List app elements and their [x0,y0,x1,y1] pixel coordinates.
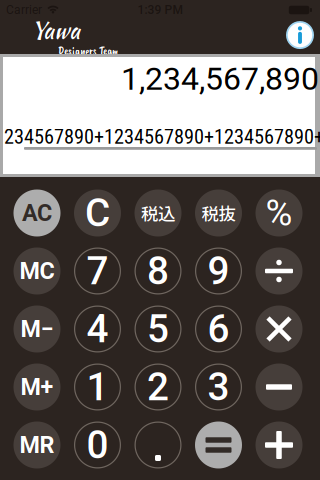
staticText: MR [19,431,54,459]
button[interactable]: MC [13,247,60,294]
button[interactable]: Minus [255,363,302,410]
button[interactable]: 5 [134,305,181,352]
staticText: M+ [20,373,53,401]
staticText: 9 [207,248,229,294]
button[interactable]: M− [13,305,60,352]
button[interactable]: 8 [134,247,181,294]
staticText: 税抜 [201,200,235,226]
button[interactable]: AC [13,189,60,236]
button[interactable]: 3 [195,363,242,410]
button[interactable]: Multiply [255,305,302,352]
button[interactable]: 6 [195,305,242,352]
button[interactable]: 税抜 [195,189,242,236]
button[interactable]: MR [13,421,60,468]
staticText: 1,234,567,890 [121,60,319,97]
staticText: 4 [86,306,108,352]
button[interactable]: C [74,189,121,236]
staticText: MC [19,257,54,285]
button[interactable]: 0 [74,421,121,468]
staticText: C [85,190,110,236]
staticText: 0 [86,422,108,468]
button[interactable]: 7 [74,247,121,294]
button[interactable]: % [255,189,302,236]
button[interactable]: Divide [255,247,302,294]
staticText: Designers Team [58,44,118,58]
button[interactable]: 9 [195,247,242,294]
staticText: 税込 [141,200,175,226]
staticText: 6 [207,306,229,352]
staticText: 8 [147,248,169,294]
button[interactable]: Equals [195,421,242,468]
staticText: 234567890+1234567890+1234567890+ [4,125,320,149]
staticText: 1:39 PM [137,3,182,17]
button[interactable]: Plus [255,421,302,468]
staticText: 1 [86,364,108,410]
staticText: % [265,191,292,234]
staticText: AC [22,199,52,227]
staticText: M− [20,315,53,343]
button[interactable]: 4 [74,305,121,352]
button[interactable]: 1 [74,363,121,410]
button[interactable]: Decimal point [134,421,181,468]
staticText: 7 [86,248,108,294]
button[interactable]: Info [286,21,314,49]
button[interactable]: M+ [13,363,60,410]
staticText: 5 [147,306,169,352]
staticText: Carrier [6,3,42,17]
staticText: 3 [207,364,229,410]
staticText: Yawa [31,13,80,47]
button[interactable]: 2 [134,363,181,410]
staticText: 2 [147,364,169,410]
button[interactable]: 税込 [134,189,181,236]
